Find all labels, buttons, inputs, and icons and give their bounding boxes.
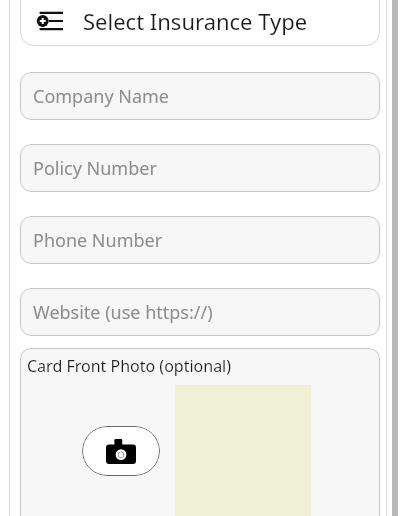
- staticText: Company Name: [33, 84, 170, 109]
- button[interactable]: Website (use https://): [20, 288, 380, 336]
- button[interactable]: Phone Number: [20, 216, 380, 264]
- button[interactable]: Company Name: [20, 72, 380, 120]
- button[interactable]: Select Insurance Type: [20, 0, 380, 46]
- staticText: Policy Number: [33, 156, 157, 181]
- button[interactable]: Policy Number: [20, 144, 380, 192]
- staticText: Card Front Photo (optional): [27, 355, 232, 377]
- button[interactable]: Take card front photo: [82, 426, 160, 476]
- staticText: Phone Number: [33, 228, 163, 253]
- staticText: Website (use https://): [33, 300, 213, 325]
- staticText: Select Insurance Type: [83, 6, 308, 36]
